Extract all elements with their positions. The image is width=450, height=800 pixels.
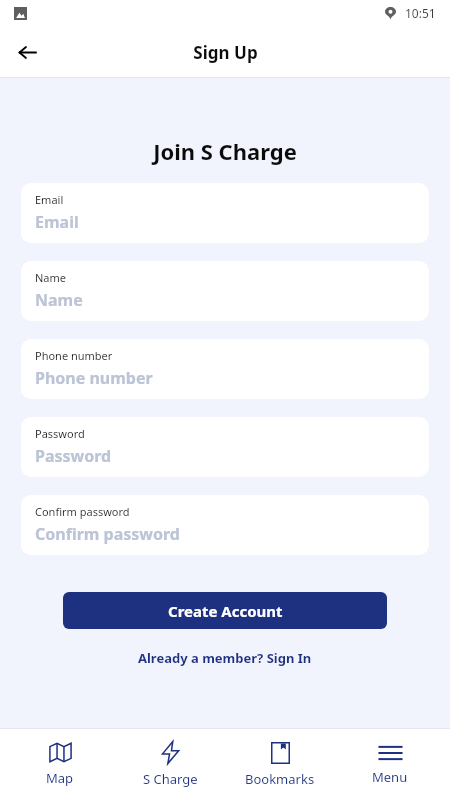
staticText: Password (35, 426, 85, 441)
button[interactable]: Name (21, 261, 429, 321)
staticText: S Charge (143, 770, 198, 788)
button[interactable]: Email (21, 183, 429, 243)
staticText: 10:51 (405, 5, 436, 21)
staticText: Map (46, 769, 74, 787)
staticText: Phone number (35, 348, 113, 363)
staticText: Password (35, 445, 112, 467)
staticText: Name (35, 289, 83, 311)
button[interactable]: Create Account (63, 592, 387, 629)
staticText: Confirm password (35, 523, 180, 545)
button[interactable]: Phone number (21, 339, 429, 399)
staticText: Join S Charge (0, 136, 450, 166)
button[interactable]: S Charge (120, 737, 220, 792)
staticText: Bookmarks (245, 770, 315, 788)
button[interactable]: Menu (340, 740, 440, 790)
button[interactable]: Password (21, 417, 429, 477)
staticText: Email (35, 211, 79, 233)
staticText: Sign Up (193, 41, 258, 64)
button[interactable]: Confirm password (21, 495, 429, 555)
staticText: Email (35, 192, 64, 207)
staticText: Name (35, 270, 67, 285)
staticText: Confirm password (35, 504, 130, 519)
staticText: Already a member? Sign In (138, 649, 312, 667)
button[interactable]: Already a member? Sign In (130, 645, 320, 671)
staticText: Create Account (168, 601, 283, 621)
button[interactable]: Map (10, 738, 110, 791)
staticText: Menu (372, 768, 408, 786)
staticText: Phone number (35, 367, 153, 389)
button[interactable]: Back (10, 35, 44, 69)
button[interactable]: Bookmarks (230, 738, 330, 792)
